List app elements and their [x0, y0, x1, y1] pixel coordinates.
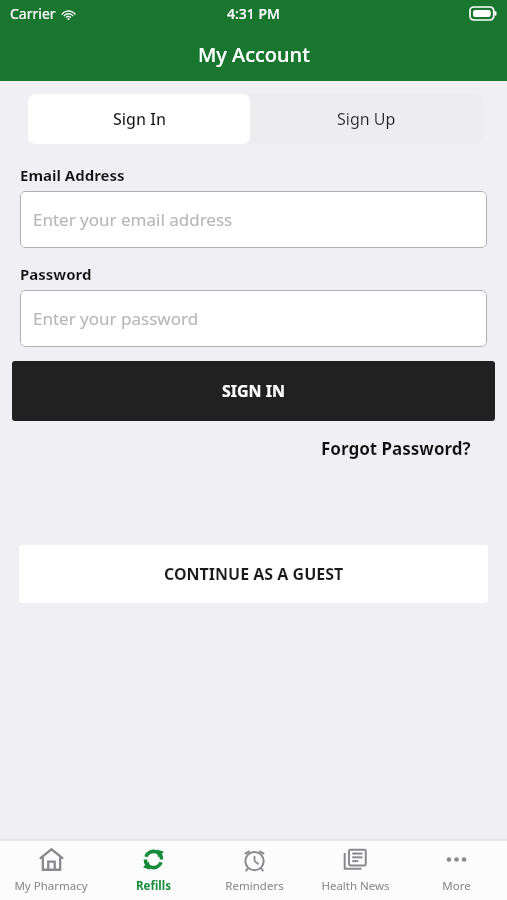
button[interactable]: SIGN IN [12, 361, 495, 421]
staticText: My Pharmacy [14, 878, 88, 894]
button[interactable]: Sign Up [250, 94, 482, 144]
button[interactable]: Enter your email address [20, 191, 487, 248]
staticText: Sign In [113, 108, 166, 130]
button[interactable]: Health News [305, 840, 406, 900]
button[interactable]: CONTINUE AS A GUEST [19, 545, 488, 603]
staticText: Enter your password [33, 307, 199, 330]
staticText: My Account [198, 41, 310, 68]
button[interactable]: Enter your password [20, 290, 487, 347]
staticText: Forgot Password? [321, 437, 471, 460]
staticText: Sign Up [337, 108, 396, 130]
staticText: Email Address [20, 165, 125, 185]
staticText: More [442, 878, 471, 894]
button[interactable]: More [406, 840, 507, 900]
staticText: 4:31 PM [227, 4, 280, 23]
button[interactable]: Forgot Password? [321, 437, 471, 460]
button[interactable]: Sign In [28, 94, 250, 144]
staticText: Carrier [10, 4, 56, 23]
staticText: Reminders [225, 878, 284, 894]
staticText: Health News [321, 878, 390, 894]
staticText: CONTINUE AS A GUEST [164, 563, 344, 585]
button[interactable]: Refills [102, 840, 204, 900]
staticText: Refills [136, 878, 171, 894]
staticText: Enter your email address [33, 208, 233, 231]
button[interactable]: My Pharmacy [0, 840, 102, 900]
button[interactable]: Reminders [204, 840, 305, 900]
staticText: Password [20, 264, 92, 284]
staticText: SIGN IN [222, 380, 286, 402]
